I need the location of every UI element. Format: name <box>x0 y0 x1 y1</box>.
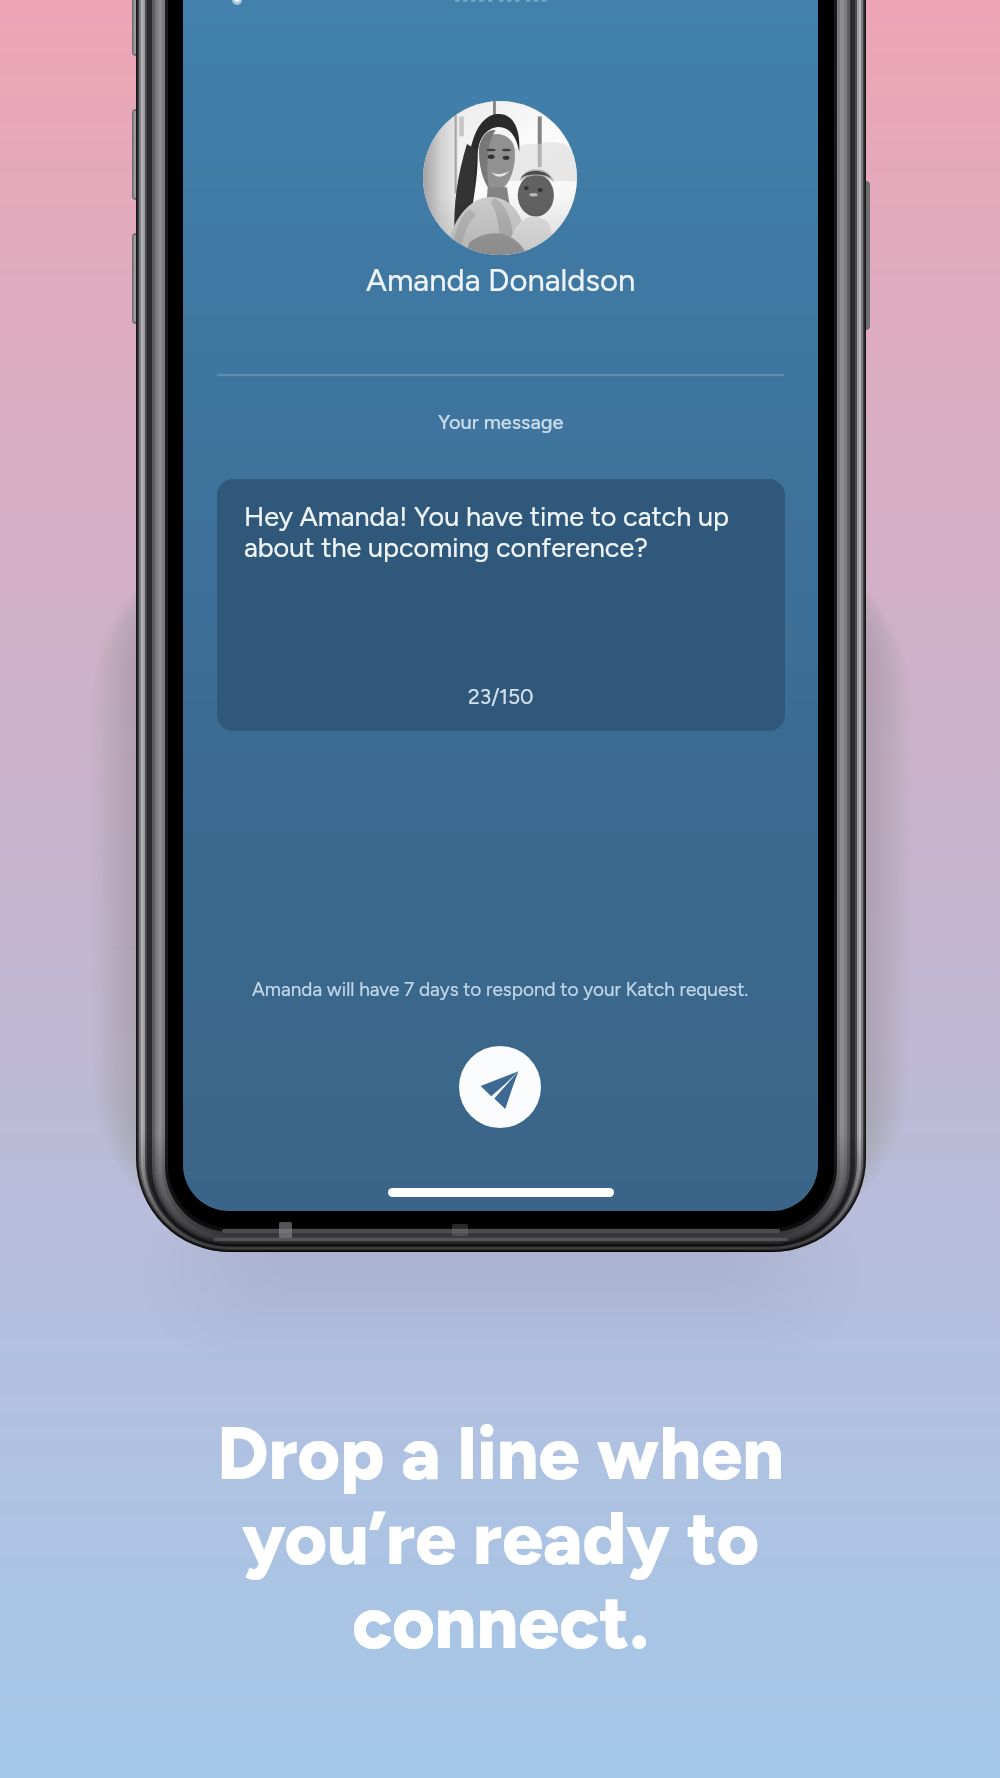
staticText: Amanda will have 7 days to respond to yo… <box>252 978 749 1001</box>
staticText: Drop a line when you’re ready to connect… <box>217 1410 784 1666</box>
staticText: Hey Amanda! You have time to catch up ab… <box>244 500 763 564</box>
button[interactable]: Profile photo of Amanda Donaldson <box>423 101 577 255</box>
staticText: Your message <box>438 410 564 434</box>
button[interactable]: Hey Amanda! You have time to catch up ab… <box>217 479 785 731</box>
staticText: Amanda Donaldson <box>366 262 636 299</box>
button[interactable]: Send message <box>459 1046 541 1128</box>
staticText: 23/150 <box>468 684 534 709</box>
